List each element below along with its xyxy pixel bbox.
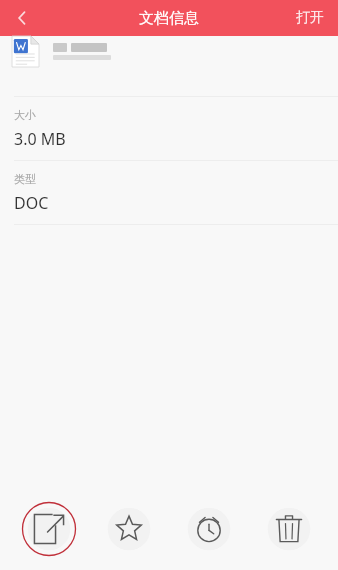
staticText: 类型 bbox=[14, 172, 36, 186]
button[interactable]: Back bbox=[0, 0, 44, 36]
button[interactable]: Reminder bbox=[181, 501, 237, 557]
button[interactable]: Open in another app bbox=[21, 501, 77, 557]
staticText: 文档信息 bbox=[139, 9, 199, 28]
button[interactable]: Delete bbox=[261, 501, 317, 557]
staticText: 大小 bbox=[14, 108, 36, 122]
button[interactable]: Favorite bbox=[101, 501, 157, 557]
button[interactable]: 大小 bbox=[0, 97, 338, 161]
button[interactable]: 类型 bbox=[0, 161, 338, 225]
button[interactable] bbox=[0, 36, 338, 97]
staticText: 3.0 MB bbox=[14, 128, 66, 150]
staticText: 打开 bbox=[296, 9, 324, 27]
button[interactable]: 打开 bbox=[282, 0, 338, 36]
staticText: DOC bbox=[14, 192, 49, 214]
